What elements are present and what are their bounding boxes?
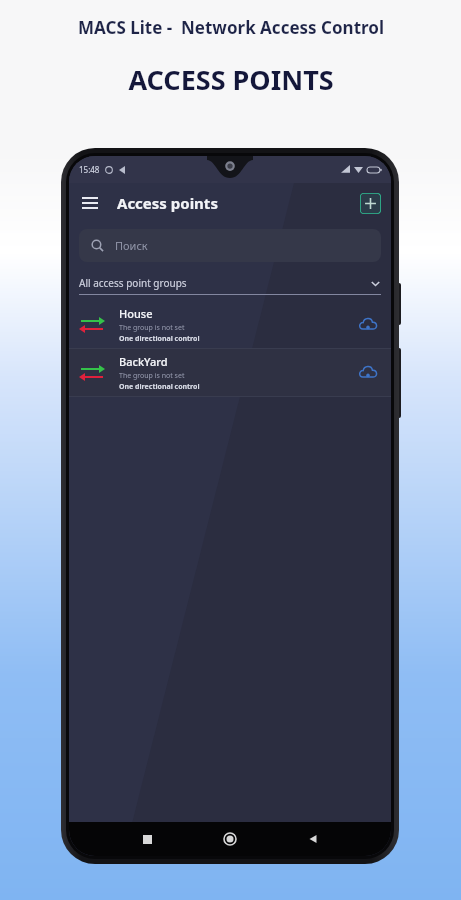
staticText: The group is not set (119, 323, 185, 333)
button[interactable]: Recent apps (134, 826, 160, 852)
staticText: BackYard (119, 354, 168, 369)
staticText: 15:48 (79, 164, 100, 175)
staticText: Поиск (115, 238, 148, 253)
staticText: All access point groups (79, 276, 187, 290)
staticText: One directional control (119, 334, 200, 344)
button[interactable]: Home (217, 826, 243, 852)
button[interactable]: Cloud connection (355, 312, 381, 338)
staticText: ACCESS POINTS (128, 61, 334, 98)
button[interactable]: Back (300, 826, 326, 852)
button[interactable]: House (69, 301, 391, 348)
staticText: House (119, 306, 153, 321)
button[interactable]: Поиск (79, 229, 381, 262)
staticText: One directional control (119, 382, 200, 392)
button[interactable]: Cloud connection (355, 360, 381, 386)
button[interactable]: BackYard (69, 349, 391, 396)
button[interactable]: Open navigation menu (75, 188, 105, 218)
button[interactable]: All access point groups (79, 272, 381, 295)
staticText: MACS Lite - Network Access Control (78, 16, 384, 39)
staticText: Access points (117, 193, 218, 213)
button[interactable]: Add access point (360, 193, 381, 214)
staticText: The group is not set (119, 371, 185, 381)
